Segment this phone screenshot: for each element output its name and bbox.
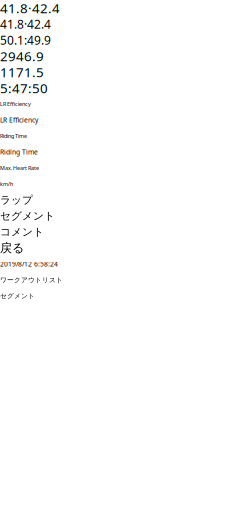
staticText: セグメント — [0, 292, 35, 300]
staticText: 5:47:50 — [0, 79, 48, 97]
staticText: ラップ — [0, 193, 33, 206]
staticText: LR Efficiency — [0, 116, 38, 124]
staticText: Riding Time — [0, 148, 38, 156]
staticText: LR Efficiency — [0, 100, 31, 108]
staticText: コメント — [0, 225, 44, 238]
staticText: 2946.9 — [0, 47, 44, 65]
staticText: ワークアウトリスト — [0, 276, 63, 284]
staticText: 2019/8/12 6:58:24 — [0, 260, 58, 268]
staticText: 戻る — [0, 241, 24, 255]
staticText: 41.8·42.4 — [0, 16, 51, 32]
staticText: km/h — [0, 180, 13, 188]
staticText: Max. Heart Rate — [0, 164, 39, 172]
staticText: セグメント — [0, 209, 55, 222]
staticText: 1171.5 — [0, 63, 44, 81]
staticText: Riding Time — [0, 132, 27, 140]
staticText: 41.8·42.4 — [0, 0, 60, 17]
staticText: 50.1:49.9 — [0, 32, 51, 48]
